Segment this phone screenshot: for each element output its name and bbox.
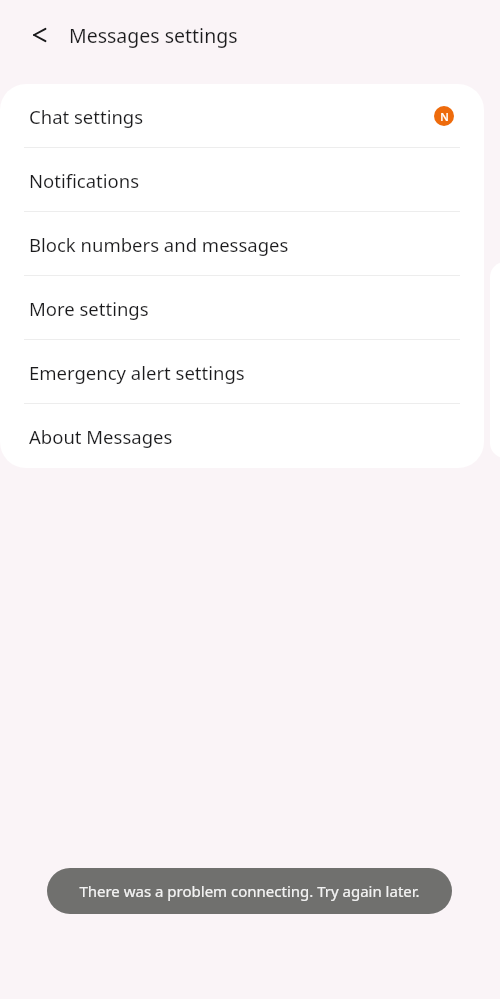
staticText: Chat settings xyxy=(29,104,144,129)
button[interactable]: Back xyxy=(18,15,58,55)
button[interactable]: Chat settings xyxy=(0,84,484,148)
button[interactable]: Emergency alert settings xyxy=(0,340,484,404)
button[interactable]: Notifications xyxy=(0,148,484,212)
staticText: Block numbers and messages xyxy=(29,232,289,257)
button[interactable]: Block numbers and messages xyxy=(0,212,484,276)
staticText: N xyxy=(440,109,449,124)
staticText: More settings xyxy=(29,296,149,321)
staticText: Messages settings xyxy=(69,22,238,49)
staticText: Emergency alert settings xyxy=(29,360,245,385)
staticText: About Messages xyxy=(29,424,173,449)
button[interactable]: About Messages xyxy=(0,404,484,468)
button[interactable]: More settings xyxy=(0,276,484,340)
staticText: There was a problem connecting. Try agai… xyxy=(79,881,420,901)
staticText: Notifications xyxy=(29,168,140,193)
